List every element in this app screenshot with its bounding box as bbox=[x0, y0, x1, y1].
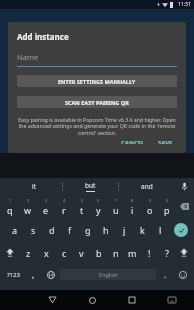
staticText: f bbox=[68, 224, 72, 236]
staticText: 5 bbox=[81, 198, 84, 203]
staticText: j bbox=[123, 224, 126, 236]
staticText: y bbox=[96, 204, 101, 216]
staticText: and bbox=[141, 182, 153, 191]
staticText: a bbox=[12, 224, 18, 236]
button[interactable]: Name bbox=[17, 52, 177, 67]
button[interactable]: ?123 bbox=[2, 264, 24, 285]
staticText: Easy pairing is available in Popcorn Tim… bbox=[17, 116, 177, 137]
button[interactable]: Shift bbox=[1, 241, 19, 264]
staticText: 4 bbox=[63, 198, 66, 203]
button[interactable]: k bbox=[133, 218, 151, 241]
staticText: c bbox=[62, 247, 67, 259]
button[interactable]: l bbox=[151, 218, 169, 241]
button[interactable]: 1 bbox=[1, 195, 19, 218]
staticText: English bbox=[99, 271, 118, 278]
button[interactable]: 5 bbox=[73, 195, 90, 218]
button[interactable]: SAVE bbox=[154, 137, 177, 146]
button[interactable]: ? bbox=[158, 241, 175, 264]
staticText: 1 bbox=[9, 198, 12, 203]
staticText: d bbox=[49, 224, 55, 236]
button[interactable]: CANCEL bbox=[117, 137, 149, 146]
staticText: Name bbox=[17, 52, 39, 62]
button[interactable]: 3 bbox=[37, 195, 55, 218]
button[interactable]: d bbox=[43, 218, 61, 241]
staticText: u bbox=[113, 204, 119, 216]
button[interactable]: . bbox=[156, 264, 174, 285]
button[interactable]: Voice input bbox=[174, 178, 194, 195]
button[interactable]: b bbox=[90, 241, 107, 264]
staticText: n bbox=[113, 247, 119, 259]
staticText: ?123 bbox=[7, 271, 20, 279]
button[interactable]: j bbox=[115, 218, 133, 241]
button[interactable]: Shift bbox=[175, 241, 193, 264]
staticText: 3 bbox=[45, 198, 48, 203]
button[interactable]: 2 bbox=[19, 195, 37, 218]
button[interactable]: Home bbox=[72, 290, 112, 310]
button[interactable]: , bbox=[24, 264, 42, 285]
staticText: . bbox=[164, 269, 167, 280]
staticText: 0 bbox=[166, 198, 169, 203]
staticText: z bbox=[26, 247, 31, 259]
button[interactable]: Backspace bbox=[175, 195, 193, 218]
button[interactable]: v bbox=[73, 241, 90, 264]
staticText: w bbox=[24, 204, 32, 216]
button[interactable]: Recent apps bbox=[112, 290, 152, 310]
staticText: SCAN EASY PAIRING QR bbox=[65, 99, 129, 106]
button[interactable]: 7 bbox=[107, 195, 124, 218]
staticText: 8 bbox=[131, 198, 134, 203]
staticText: 6 bbox=[97, 198, 100, 203]
staticText: but bbox=[85, 181, 96, 190]
button[interactable]: 6 bbox=[90, 195, 107, 218]
staticText: x bbox=[44, 247, 49, 259]
staticText: o bbox=[147, 204, 153, 216]
staticText: ENTER SETTINGS MANUALLY bbox=[58, 78, 136, 85]
staticText: it bbox=[32, 182, 37, 191]
button[interactable]: SCAN EASY PAIRING QR bbox=[17, 96, 177, 108]
staticText: 7 bbox=[115, 198, 118, 203]
button[interactable]: but bbox=[63, 178, 118, 195]
button[interactable]: g bbox=[79, 218, 97, 241]
staticText: p bbox=[164, 204, 170, 216]
staticText: b bbox=[96, 247, 102, 259]
button[interactable]: Enter bbox=[169, 218, 193, 241]
button[interactable]: a bbox=[5, 218, 24, 241]
staticText: g bbox=[85, 224, 91, 236]
staticText: 9 bbox=[149, 198, 152, 203]
button[interactable]: 0 bbox=[158, 195, 175, 218]
staticText: s bbox=[31, 224, 36, 236]
button[interactable]: m bbox=[124, 241, 141, 264]
button[interactable]: it bbox=[6, 178, 62, 195]
staticText: SAVE bbox=[158, 139, 173, 144]
staticText: h bbox=[103, 224, 109, 236]
button[interactable]: Switch keyboard bbox=[152, 290, 192, 310]
button[interactable]: and bbox=[119, 178, 174, 195]
button[interactable]: 9 bbox=[141, 195, 158, 218]
staticText: ? bbox=[165, 247, 169, 259]
staticText: l bbox=[159, 224, 162, 236]
button[interactable]: z bbox=[19, 241, 37, 264]
staticText: ! bbox=[148, 247, 151, 259]
button[interactable]: English bbox=[60, 269, 156, 280]
staticText: t bbox=[80, 204, 84, 216]
staticText: m bbox=[128, 247, 137, 259]
button[interactable]: 8 bbox=[124, 195, 141, 218]
button[interactable]: s bbox=[24, 218, 43, 241]
staticText: 2 bbox=[27, 198, 30, 203]
button[interactable]: ! bbox=[141, 241, 158, 264]
button[interactable]: Emoji bbox=[174, 264, 192, 285]
button[interactable]: 4 bbox=[55, 195, 73, 218]
button[interactable]: x bbox=[37, 241, 55, 264]
staticText: r bbox=[62, 204, 66, 216]
button[interactable]: h bbox=[97, 218, 115, 241]
staticText: , bbox=[32, 269, 35, 280]
button[interactable]: Change language bbox=[42, 264, 60, 285]
staticText: e bbox=[43, 204, 49, 216]
button[interactable]: c bbox=[55, 241, 73, 264]
button[interactable]: f bbox=[61, 218, 79, 241]
button[interactable]: Back bbox=[32, 290, 72, 310]
staticText: q bbox=[7, 204, 13, 216]
staticText: i bbox=[131, 204, 134, 216]
button[interactable]: n bbox=[107, 241, 124, 264]
button[interactable]: ENTER SETTINGS MANUALLY bbox=[17, 75, 177, 87]
staticText: 11:31 bbox=[178, 1, 191, 8]
